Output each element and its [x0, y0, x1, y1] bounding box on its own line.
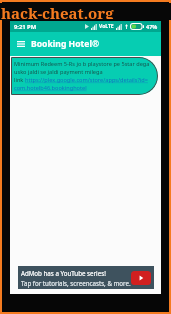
staticText: hack-cheat.org: [1, 3, 114, 19]
staticText: 47%: [146, 23, 158, 30]
staticText: link: [14, 76, 25, 84]
button[interactable]: Open navigation menu: [10, 32, 31, 56]
staticText: VoLTE: [99, 23, 114, 30]
staticText: usko jaldi se jaldi payment milega: [14, 68, 103, 76]
staticText: 9:21 PM: [14, 23, 37, 31]
staticText: Booking Hotel®: [31, 38, 100, 50]
button[interactable]: Minimum Redeem 5-Rs jo b playstore pe 5s…: [11, 57, 158, 95]
staticText: AdMob has a YouTube series!: [21, 269, 106, 277]
staticText: Tap for tutorials, screencasts, & more.: [21, 279, 131, 287]
staticText: Minimum Redeem 5-Rs jo b playstore pe 5s…: [14, 60, 150, 68]
staticText: com.hotelb46.bookinghotel: [14, 84, 87, 92]
button[interactable]: AdMob has a YouTube series!: [18, 266, 154, 289]
staticText: https://plex.google.com/store/apps/detai…: [25, 76, 148, 84]
